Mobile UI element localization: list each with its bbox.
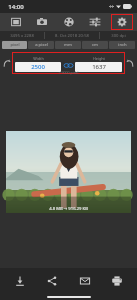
staticText: inch [118, 42, 127, 48]
staticText: Height [93, 56, 105, 61]
staticText: 3495 x 2288 [10, 33, 34, 39]
button[interactable]: Link aspect ratio [64, 62, 73, 68]
staticText: 8. Oct 2018 20:58 [55, 33, 89, 39]
button[interactable]: Email [72, 271, 98, 291]
button[interactable]: a pixel [28, 41, 54, 49]
button[interactable]: pixel [2, 41, 27, 49]
button[interactable]: cm [82, 41, 108, 49]
staticText: = 9000 pixel [58, 70, 79, 75]
staticText: pixel [10, 42, 20, 48]
button[interactable]: Download [7, 271, 33, 291]
button[interactable]: Rotate right [124, 57, 136, 69]
button[interactable]: mm [55, 41, 81, 49]
staticText: cm [92, 42, 98, 48]
staticText: 4.8 MB → 916.29 KB [49, 206, 88, 212]
button[interactable]: Print [104, 271, 130, 291]
staticText: 1637 [92, 63, 106, 71]
button[interactable]: Photo preview [6, 131, 131, 213]
staticText: 2500 [31, 63, 45, 71]
staticText: 14:00 [8, 3, 24, 11]
button[interactable]: Settings [111, 14, 133, 30]
button[interactable]: 2500 [15, 62, 61, 72]
staticText: a pixel [35, 42, 48, 48]
staticText: mm [64, 42, 72, 48]
button[interactable]: Rotate left [1, 57, 13, 69]
button[interactable]: Share [39, 271, 65, 291]
button[interactable]: Adjust [84, 14, 106, 30]
button[interactable]: inch [109, 41, 135, 49]
button[interactable]: Image [5, 14, 27, 30]
button[interactable]: Camera [31, 14, 53, 30]
staticText: 300 dpi [111, 33, 126, 39]
button[interactable]: 1637 [75, 62, 122, 72]
button[interactable]: Palette [58, 14, 80, 30]
staticText: Width [33, 56, 44, 61]
